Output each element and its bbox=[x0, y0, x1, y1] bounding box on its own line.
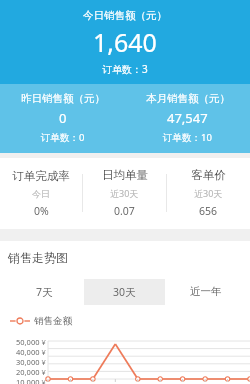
staticText: 客单价 bbox=[191, 168, 226, 182]
button[interactable]: 昨日销售额（元） bbox=[0, 92, 125, 144]
staticText: 10,000 ¥ bbox=[16, 377, 46, 384]
staticText: 订单数：3 bbox=[102, 62, 148, 76]
staticText: 订单数：0 bbox=[41, 131, 85, 144]
staticText: 近30天 bbox=[194, 187, 223, 199]
staticText: 本月销售额（元） bbox=[146, 92, 230, 105]
staticText: 0.07 bbox=[114, 204, 135, 218]
staticText: 30天 bbox=[113, 285, 136, 299]
button[interactable]: 销售金额 bbox=[10, 315, 72, 327]
button[interactable]: 近一年 bbox=[165, 279, 246, 304]
staticText: 0 bbox=[59, 109, 67, 127]
staticText: 今日 bbox=[32, 188, 50, 199]
staticText: 订单完成率 bbox=[12, 169, 70, 183]
staticText: 656 bbox=[199, 204, 218, 218]
staticText: 50,000 ¥ bbox=[16, 337, 46, 347]
staticText: 47,547 bbox=[167, 109, 208, 127]
staticText: 近一年 bbox=[190, 285, 222, 298]
staticText: 订单数：10 bbox=[163, 131, 212, 144]
staticText: 日均单量 bbox=[102, 168, 148, 182]
staticText: 销售金额 bbox=[34, 315, 72, 327]
staticText: 销售走势图 bbox=[8, 250, 68, 265]
staticText: 1,640 bbox=[93, 25, 157, 59]
button[interactable]: 订单完成率 bbox=[0, 169, 82, 218]
staticText: 30,000 ¥ bbox=[16, 357, 46, 367]
staticText: 今日销售额（元） bbox=[83, 9, 167, 22]
staticText: 40,000 ¥ bbox=[16, 347, 46, 357]
button[interactable]: 30天 bbox=[84, 279, 165, 305]
staticText: 7天 bbox=[36, 285, 53, 299]
button[interactable]: 客单价 bbox=[167, 168, 250, 218]
button[interactable]: 本月销售额（元） bbox=[125, 92, 250, 144]
staticText: 0% bbox=[34, 204, 49, 218]
button[interactable]: 7天 bbox=[4, 279, 84, 305]
button[interactable]: 日均单量 bbox=[83, 168, 166, 218]
staticText: 昨日销售额（元） bbox=[21, 92, 105, 105]
staticText: 20,000 ¥ bbox=[16, 367, 46, 377]
staticText: 近30天 bbox=[110, 187, 139, 199]
